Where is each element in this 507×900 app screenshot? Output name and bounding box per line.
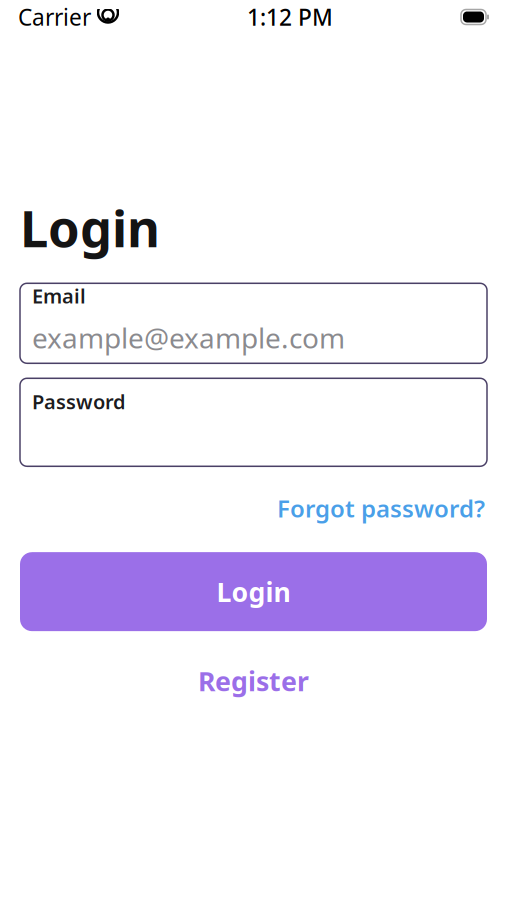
staticText: Email: [32, 282, 86, 309]
staticText: Register: [198, 663, 309, 699]
staticText: Carrier: [18, 2, 91, 32]
staticText: Login: [20, 194, 160, 261]
button[interactable]: Login: [20, 552, 487, 631]
staticText: example@example.com: [32, 319, 345, 356]
staticText: 1:12 PM: [247, 2, 333, 32]
staticText: Login: [216, 574, 290, 609]
button[interactable]: Forgot password?: [277, 486, 485, 530]
staticText: Forgot password?: [277, 492, 485, 524]
staticText: Password: [32, 388, 126, 415]
button[interactable]: Register: [20, 653, 487, 709]
